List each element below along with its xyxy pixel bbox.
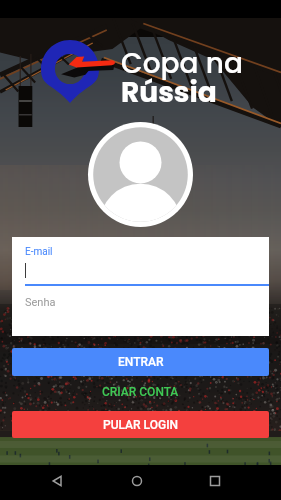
staticText: ENTRAR xyxy=(118,355,164,369)
staticText: PULAR LOGIN xyxy=(103,418,179,432)
staticText: Rússia xyxy=(121,73,217,112)
staticText: CRIAR CONTA xyxy=(102,385,179,399)
staticText: E-mail xyxy=(25,246,53,258)
button[interactable]: Recent apps xyxy=(205,471,225,491)
button[interactable]: Back xyxy=(48,471,68,491)
button[interactable]: ENTRAR xyxy=(12,348,269,376)
staticText: Copa na xyxy=(121,44,243,83)
staticText: Senha xyxy=(25,296,56,309)
button[interactable]: CRIAR CONTA xyxy=(12,380,269,404)
button[interactable]: PULAR LOGIN xyxy=(12,411,269,438)
button[interactable]: Home xyxy=(127,471,147,491)
